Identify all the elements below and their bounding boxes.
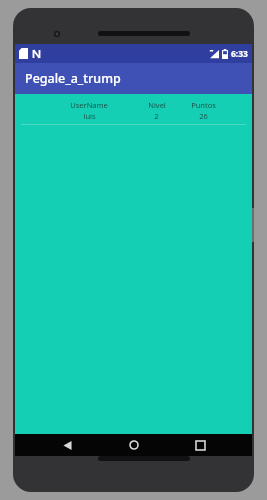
staticText: 6:33 xyxy=(231,48,248,60)
staticText: luis xyxy=(83,111,96,121)
button[interactable]: Home xyxy=(119,434,149,456)
staticText: Nivel xyxy=(148,100,166,110)
button[interactable]: Back xyxy=(52,434,82,456)
staticText: Puntos xyxy=(191,100,216,110)
staticText: 26 xyxy=(199,111,208,121)
button[interactable]: Pegale_a_trump xyxy=(15,63,252,94)
staticText: 2 xyxy=(154,111,159,121)
staticText: UserName xyxy=(70,100,108,110)
button[interactable]: UserName xyxy=(15,100,252,121)
staticText: Pegale_a_trump xyxy=(25,70,121,87)
button[interactable]: Recent apps xyxy=(185,434,215,456)
